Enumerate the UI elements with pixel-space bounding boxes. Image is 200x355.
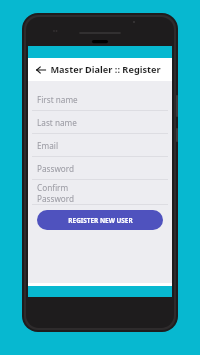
button[interactable]: First name <box>28 88 172 111</box>
staticText: Email <box>37 140 59 151</box>
button[interactable]: REGISTER NEW USER <box>37 210 163 230</box>
staticText: Password <box>37 193 75 204</box>
staticText: REGISTER NEW USER <box>68 216 133 225</box>
staticText: First name <box>37 94 78 105</box>
button[interactable]: Back <box>33 62 49 78</box>
button[interactable]: Confirm <box>28 180 172 205</box>
button[interactable]: Last name <box>28 111 172 134</box>
staticText: Master Dialer :: Register <box>50 63 161 76</box>
button[interactable]: Password <box>28 157 172 180</box>
button[interactable]: Email <box>28 134 172 157</box>
staticText: Last name <box>37 117 77 128</box>
staticText: Password <box>37 163 75 174</box>
staticText: Confirm <box>37 182 69 193</box>
